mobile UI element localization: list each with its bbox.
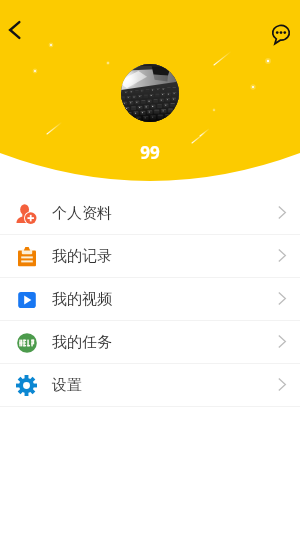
button[interactable]: 个人资料 (0, 192, 300, 234)
button[interactable]: 我的记录 (0, 235, 300, 277)
button[interactable]: 我的任务 (0, 321, 300, 363)
button[interactable]: Avatar (121, 64, 179, 122)
staticText: 设置 (52, 376, 82, 395)
button[interactable]: 我的视频 (0, 278, 300, 320)
staticText: 我的视频 (52, 290, 112, 309)
button[interactable]: Messages (263, 16, 299, 52)
staticText: 我的记录 (52, 247, 112, 266)
staticText: 我的任务 (52, 333, 112, 352)
staticText: 个人资料 (52, 204, 112, 223)
button[interactable]: Back (0, 12, 32, 48)
staticText: 99 (140, 141, 160, 164)
button[interactable]: 设置 (0, 364, 300, 406)
